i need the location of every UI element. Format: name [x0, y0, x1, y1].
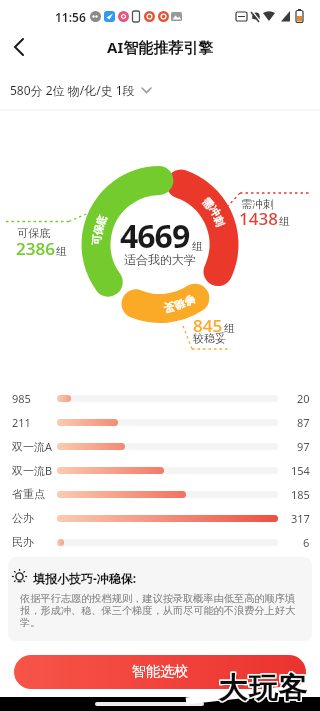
staticText: 公办 [12, 511, 34, 525]
staticText: 需 [199, 195, 216, 212]
staticText: 154 [291, 463, 310, 478]
staticText: 可保底 [17, 226, 50, 240]
staticText: 211 [12, 415, 31, 430]
staticText: 省重点 [12, 487, 45, 501]
staticText: 580分 2位 物/化/史 1段 [10, 82, 135, 98]
staticText: 185 [291, 487, 310, 502]
staticText: 大玩客 [217, 669, 307, 706]
staticText: 87 [297, 415, 310, 430]
staticText: 依据平行志愿的投档规则，建议按录取概率由低至高的顺序填 报，形成冲、稳、保三个梯… [20, 592, 296, 629]
button[interactable]: 580分 2位 物/化/史 1段 [10, 80, 157, 100]
staticText: 845 [193, 314, 223, 337]
staticText: 2386 [16, 237, 55, 260]
staticText: 妥 [162, 300, 175, 315]
staticText: 大玩客 [217, 670, 307, 707]
button[interactable]: 智能选校 [14, 655, 306, 689]
staticText: 1438 [239, 207, 278, 230]
staticText: 需冲刺 [241, 197, 274, 211]
staticText: 11:56 [55, 9, 86, 25]
staticText: 适合我的大学 [124, 252, 196, 267]
staticText: 大玩客 [217, 671, 307, 708]
staticText: 大玩客 [218, 670, 308, 707]
staticText: 双一流B [12, 463, 53, 478]
staticText: 97 [297, 439, 310, 454]
staticText: 大玩客 [219, 670, 309, 707]
staticText: 够 [181, 292, 197, 309]
staticText: 6 [303, 535, 310, 550]
staticText: 985 [12, 391, 31, 406]
staticText: 保 [91, 223, 106, 236]
staticText: 双一流A [12, 439, 53, 454]
staticText: 4669 [120, 214, 190, 258]
staticText: 民办 [12, 535, 34, 549]
staticText: 组 [192, 239, 203, 253]
staticText: 大玩客 [218, 669, 308, 706]
staticText: 较稳妥 [193, 331, 226, 345]
staticText: 组 [279, 214, 290, 228]
staticText: 大玩客 [219, 671, 309, 708]
staticText: 填报小技巧-冲稳保: [33, 570, 137, 586]
staticText: 冲 [206, 204, 223, 220]
staticText: 大玩客 [218, 671, 308, 708]
staticText: 刺 [211, 214, 227, 229]
staticText: 大玩客 [219, 669, 309, 706]
staticText: 稳 [172, 297, 187, 313]
staticText: 可 [90, 234, 103, 245]
staticText: AI智能推荐引擎 [107, 37, 214, 57]
button[interactable] [0, 34, 36, 60]
staticText: 底 [94, 213, 110, 228]
staticText: 20 [297, 391, 310, 406]
staticText: 317 [291, 511, 310, 526]
staticText: 智能选校 [132, 663, 188, 681]
staticText: 组 [224, 321, 235, 335]
staticText: 组 [56, 244, 67, 258]
